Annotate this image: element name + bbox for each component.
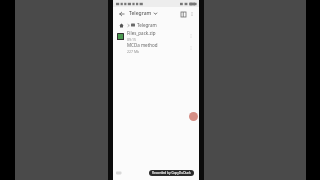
staticText: 227 Mb [127,49,140,54]
staticText: MCDa method [127,42,158,48]
button[interactable]: More options [188,10,196,18]
button[interactable]: Files_pack.zip [113,30,199,42]
button[interactable]: Back [116,8,127,19]
staticText: Recorded by CopyDuDuck [152,171,191,175]
button[interactable]: Home [117,21,125,29]
staticText: Telegram [129,10,152,17]
button[interactable]: Item menu [187,32,195,40]
staticText: Files_pack.zip [127,30,156,36]
button[interactable]: View mode [178,9,188,19]
button[interactable]: MCDa method [113,42,199,54]
staticText: 09:15 [127,37,136,42]
staticText: Telegram [137,22,157,28]
button[interactable]: Telegram [129,10,178,17]
button[interactable]: Item menu [187,44,195,52]
